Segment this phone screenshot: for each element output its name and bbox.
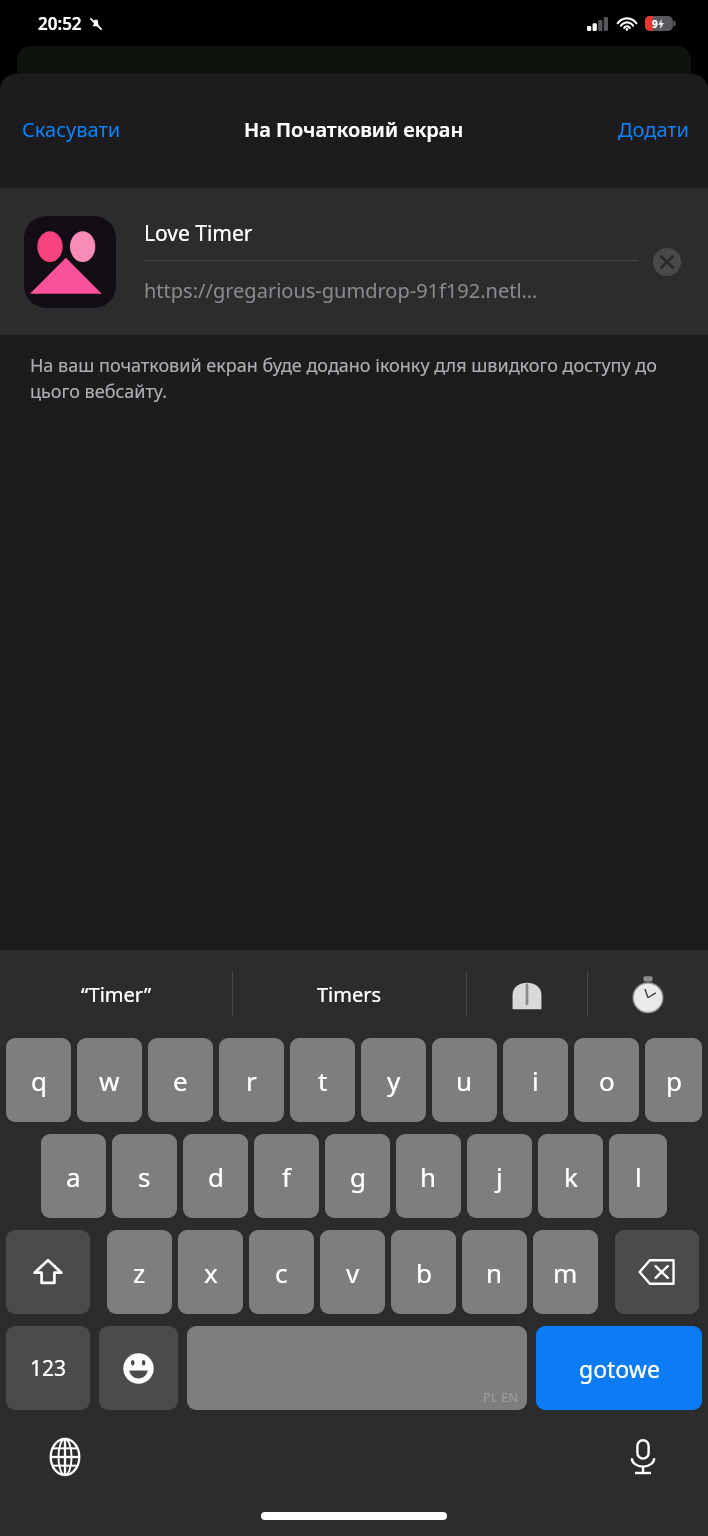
button[interactable]: Timers (233, 950, 466, 1038)
staticText: n (486, 1255, 503, 1290)
staticText: y (387, 1063, 401, 1098)
button[interactable]: Dictation (618, 1432, 668, 1482)
staticText: Додати (618, 116, 690, 143)
staticText: c (275, 1255, 288, 1290)
staticText: На Початковий екран (244, 116, 464, 143)
button[interactable]: s (112, 1134, 177, 1218)
button[interactable]: k (538, 1134, 603, 1218)
staticText: u (456, 1063, 473, 1098)
staticText: f (282, 1159, 291, 1194)
staticText: Timers (317, 981, 382, 1008)
button[interactable]: Emoji (99, 1326, 178, 1410)
staticText: e (173, 1063, 188, 1098)
staticText: s (138, 1159, 151, 1194)
staticText: h (420, 1159, 437, 1194)
staticText: https://gregarious-gumdrop-91f192.netl… (144, 277, 538, 304)
staticText: w (99, 1063, 120, 1098)
button[interactable]: r (219, 1038, 284, 1122)
button[interactable]: Space (187, 1326, 527, 1410)
button[interactable]: e (148, 1038, 213, 1122)
button[interactable]: Timer emoji (467, 950, 587, 1038)
button[interactable]: a (41, 1134, 106, 1218)
button[interactable]: y (361, 1038, 426, 1122)
staticText: b (416, 1255, 432, 1290)
staticText: k (564, 1159, 578, 1194)
staticText: На ваш початковий екран буде додано ікон… (30, 353, 678, 404)
staticText: x (204, 1255, 218, 1290)
button[interactable]: x (178, 1230, 243, 1314)
button[interactable]: j (467, 1134, 532, 1218)
staticText: r (246, 1063, 257, 1098)
button[interactable]: t (290, 1038, 355, 1122)
button[interactable]: Stopwatch emoji (588, 950, 708, 1038)
staticText: a (66, 1159, 81, 1194)
button[interactable]: Backspace (615, 1230, 699, 1314)
staticText: i (532, 1063, 539, 1098)
button[interactable]: l (609, 1134, 667, 1218)
button[interactable]: m (533, 1230, 598, 1314)
button[interactable]: g (325, 1134, 390, 1218)
button[interactable]: c (249, 1230, 314, 1314)
staticText: 9 (652, 17, 658, 31)
staticText: m (553, 1255, 578, 1290)
staticText: g (350, 1159, 366, 1194)
staticText: p (666, 1063, 682, 1098)
staticText: PL EN (483, 1388, 519, 1406)
button[interactable]: w (77, 1038, 142, 1122)
button[interactable]: v (320, 1230, 385, 1314)
button[interactable]: Додати (600, 102, 708, 157)
button[interactable]: h (396, 1134, 461, 1218)
button[interactable]: q (6, 1038, 71, 1122)
button[interactable]: z (107, 1230, 172, 1314)
button[interactable]: gotowe (536, 1326, 702, 1410)
button[interactable]: p (645, 1038, 702, 1122)
staticText: v (346, 1255, 360, 1290)
staticText: l (635, 1159, 642, 1194)
staticText: Скасувати (22, 116, 121, 143)
button[interactable]: d (183, 1134, 248, 1218)
staticText: t (318, 1063, 328, 1098)
staticText: 123 (30, 1354, 67, 1383)
staticText: gotowe (579, 1353, 660, 1384)
button[interactable]: “Timer” (0, 950, 232, 1038)
button[interactable]: f (254, 1134, 319, 1218)
staticText: Love Timer (144, 219, 253, 248)
staticText: q (31, 1063, 47, 1098)
button[interactable]: Скасувати (0, 102, 143, 157)
button[interactable]: 123 (6, 1326, 90, 1410)
button[interactable]: Clear (638, 233, 696, 291)
button[interactable]: o (574, 1038, 639, 1122)
staticText: o (599, 1063, 615, 1098)
button[interactable]: u (432, 1038, 497, 1122)
button[interactable]: Shift (6, 1230, 90, 1314)
button[interactable]: n (462, 1230, 527, 1314)
staticText: “Timer” (81, 981, 152, 1008)
button[interactable]: b (391, 1230, 456, 1314)
button[interactable]: i (503, 1038, 568, 1122)
staticText: 20:52 (38, 12, 82, 35)
button[interactable]: Change keyboard (40, 1432, 90, 1482)
staticText: z (133, 1255, 146, 1290)
staticText: d (208, 1159, 224, 1194)
staticText: j (496, 1159, 503, 1194)
